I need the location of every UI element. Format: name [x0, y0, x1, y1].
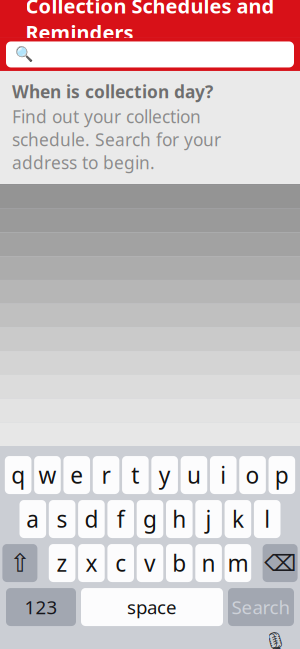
staticText: Search: [231, 595, 290, 619]
button[interactable]: r: [93, 456, 119, 494]
staticText: n: [202, 548, 216, 578]
staticText: v: [144, 548, 156, 578]
staticText: l: [264, 504, 270, 534]
staticText: space: [127, 595, 177, 619]
staticText: y: [159, 460, 171, 490]
staticText: k: [232, 504, 244, 534]
button[interactable]: Search: [228, 588, 294, 626]
button[interactable]: p: [269, 456, 295, 494]
button[interactable]: b: [166, 544, 193, 582]
button[interactable]: u: [181, 456, 207, 494]
staticText: 🎙: [262, 631, 287, 649]
button[interactable]: c: [107, 544, 134, 582]
staticText: d: [84, 504, 98, 534]
button[interactable]: z: [49, 544, 75, 582]
staticText: j: [206, 504, 212, 534]
button[interactable]: v: [137, 544, 163, 582]
button[interactable]: d: [78, 500, 105, 538]
button[interactable]: w: [34, 456, 61, 494]
staticText: u: [187, 460, 201, 490]
button[interactable]: k: [225, 500, 251, 538]
button[interactable]: s: [49, 500, 75, 538]
staticText: x: [85, 548, 97, 578]
staticText: w: [38, 460, 56, 490]
staticText: e: [70, 460, 83, 490]
staticText: o: [246, 460, 260, 490]
button[interactable]: Dictate: [260, 629, 290, 649]
button[interactable]: space: [81, 588, 223, 626]
staticText: i: [220, 460, 226, 490]
staticText: t: [131, 460, 139, 490]
staticText: ⇧: [9, 549, 30, 577]
button[interactable]: l: [254, 500, 280, 538]
button[interactable]: n: [195, 544, 222, 582]
staticText: g: [143, 504, 157, 534]
staticText: b: [172, 548, 186, 578]
staticText: 🔍: [15, 46, 33, 63]
staticText: m: [227, 548, 248, 578]
staticText: When is collection day?: [12, 80, 213, 103]
staticText: c: [115, 548, 126, 578]
button[interactable]: g: [137, 500, 163, 538]
staticText: ⌫: [264, 550, 296, 576]
staticText: 123: [24, 595, 57, 619]
button[interactable]: e: [63, 456, 90, 494]
staticText: p: [275, 460, 289, 490]
button[interactable]: m: [225, 544, 251, 582]
button[interactable]: a: [19, 500, 46, 538]
staticText: q: [11, 460, 25, 490]
button[interactable]: y: [151, 456, 178, 494]
button[interactable]: i: [210, 456, 237, 494]
button[interactable]: Delete: [263, 544, 298, 582]
button[interactable]: t: [122, 456, 149, 494]
staticText: a: [26, 504, 39, 534]
staticText: Find out your collection schedule. Searc…: [12, 105, 221, 174]
button[interactable]: Shift: [2, 544, 37, 582]
staticText: r: [101, 460, 110, 490]
button[interactable]: x: [78, 544, 105, 582]
button[interactable]: f: [107, 500, 134, 538]
staticText: f: [117, 504, 125, 534]
button[interactable]: o: [239, 456, 266, 494]
staticText: s: [57, 504, 68, 534]
staticText: Collection Schedules and Reminders: [25, 0, 274, 45]
button[interactable]: j: [195, 500, 222, 538]
button[interactable]: h: [166, 500, 193, 538]
staticText: h: [172, 504, 186, 534]
staticText: z: [57, 548, 68, 578]
button[interactable]: 123: [6, 588, 76, 626]
button[interactable]: q: [5, 456, 31, 494]
